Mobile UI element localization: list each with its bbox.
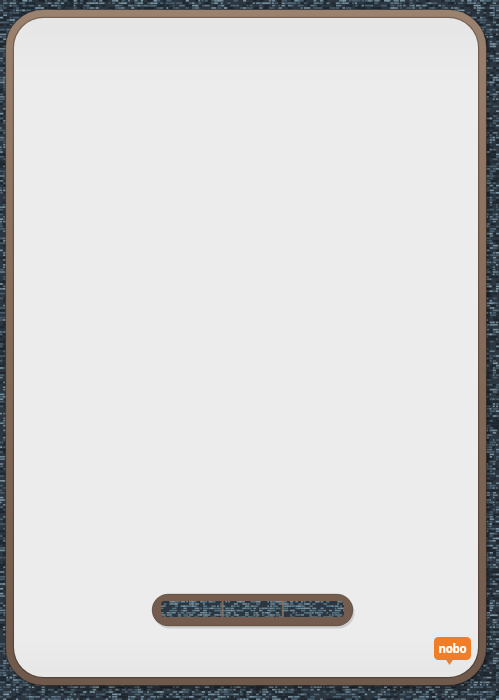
button[interactable]: Nobo whiteboard bbox=[0, 0, 499, 700]
